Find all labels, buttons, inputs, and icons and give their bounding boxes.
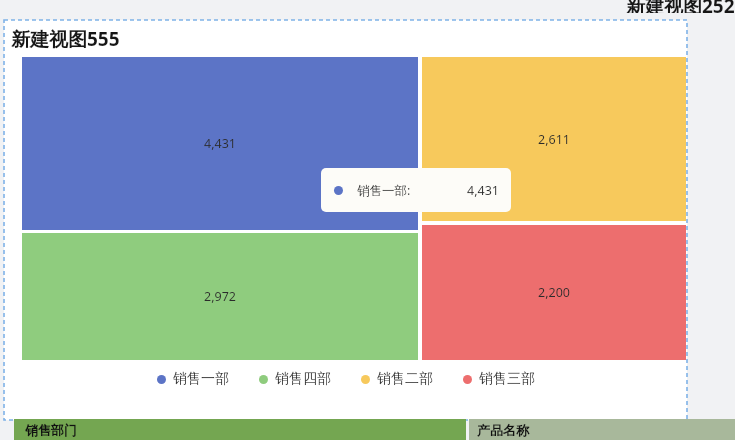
button[interactable]: 销售三部 2,200 bbox=[422, 225, 686, 360]
button[interactable]: 销售三部 bbox=[461, 367, 537, 391]
staticText: 新建视图252 bbox=[626, 0, 735, 13]
staticText: 4,431 bbox=[467, 182, 499, 199]
staticText: 销售四部 bbox=[275, 370, 331, 388]
button[interactable]: 产品名称 bbox=[469, 419, 735, 440]
button[interactable]: 销售四部 bbox=[257, 367, 333, 391]
staticText: 2,972 bbox=[204, 288, 236, 305]
staticText: 销售三部 bbox=[479, 370, 535, 388]
staticText: 2,611 bbox=[538, 131, 570, 148]
staticText: 销售一部 bbox=[173, 370, 229, 388]
staticText: 产品名称 bbox=[477, 422, 529, 438]
staticText: 新建视图555 bbox=[11, 26, 120, 52]
button[interactable]: 销售二部 bbox=[359, 367, 435, 391]
button[interactable]: 销售一部 4,431 bbox=[22, 57, 418, 230]
button[interactable]: 销售一部: bbox=[321, 168, 511, 212]
button[interactable]: 销售四部 2,972 bbox=[22, 233, 418, 360]
staticText: 销售部门 bbox=[25, 422, 77, 438]
button[interactable]: 销售部门 bbox=[14, 419, 466, 440]
button[interactable]: 销售二部 2,611 bbox=[422, 57, 686, 221]
staticText: 4,431 bbox=[204, 135, 236, 152]
button[interactable]: 销售一部 bbox=[155, 367, 231, 391]
staticText: 销售一部: bbox=[357, 182, 411, 199]
staticText: 销售二部 bbox=[377, 370, 433, 388]
staticText: 2,200 bbox=[538, 284, 570, 301]
